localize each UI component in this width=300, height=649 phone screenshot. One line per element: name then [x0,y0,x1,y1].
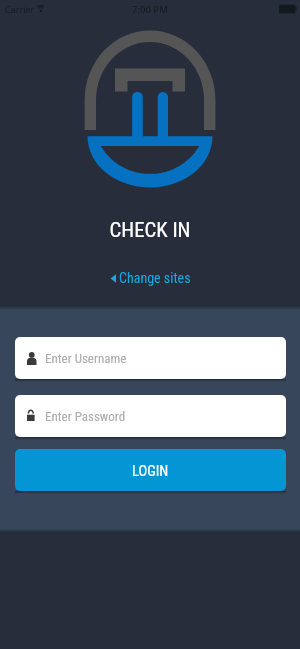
button[interactable]: Enter Username [15,337,286,379]
staticText: 7:00 PM [132,3,168,16]
button[interactable]: Enter Password [15,395,286,437]
button[interactable]: LOGIN [15,449,286,491]
staticText: CHECK IN [109,218,191,242]
other: Battery [279,4,299,14]
staticText: LOGIN [132,463,169,480]
staticText: Enter Password [45,409,126,424]
other: Wi-Fi [35,3,47,13]
staticText: Change sites [119,270,191,286]
staticText: Carrier [5,3,35,15]
button[interactable]: Change sites [110,270,191,286]
staticText: Enter Username [45,351,127,366]
